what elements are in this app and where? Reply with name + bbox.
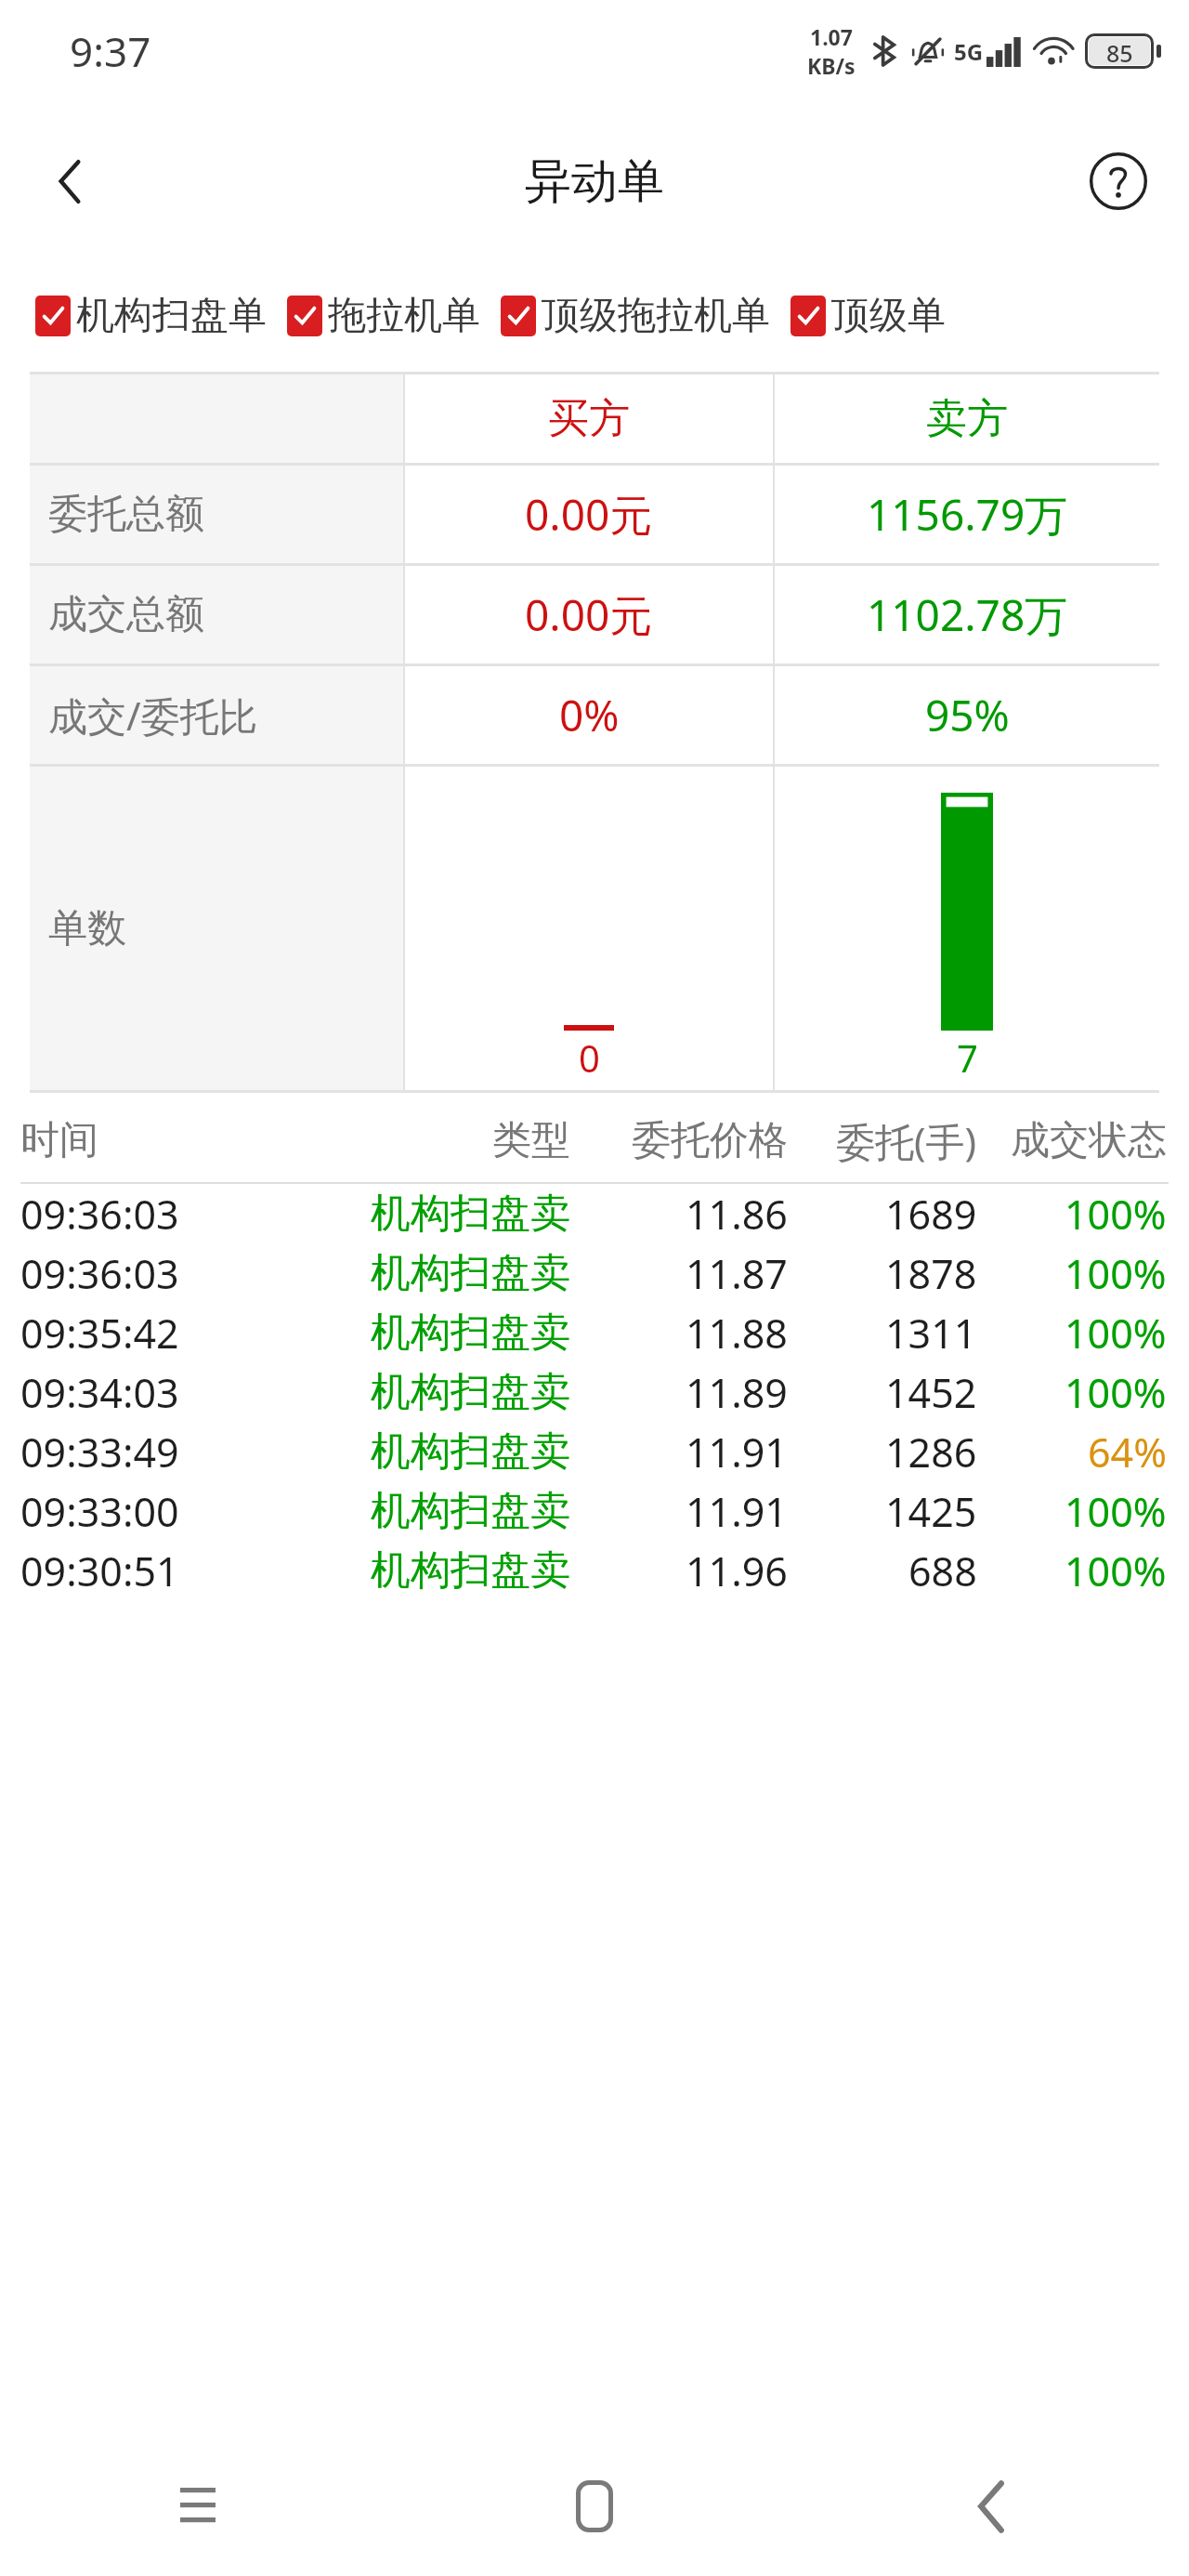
staticText: 单数 bbox=[48, 904, 126, 953]
staticText: 机构扫盘卖 bbox=[371, 1189, 570, 1239]
staticText: 拖拉机单 bbox=[328, 292, 480, 340]
staticText: KB/s bbox=[807, 51, 856, 80]
button[interactable]: 09:35:42 bbox=[0, 1303, 1189, 1362]
staticText: 1.07 bbox=[810, 22, 853, 51]
staticText: 成交/委托比 bbox=[48, 689, 258, 742]
staticText: 机构扫盘卖 bbox=[371, 1367, 570, 1417]
button[interactable]: Back bbox=[792, 2437, 1189, 2576]
staticText: 1286 bbox=[885, 1425, 977, 1479]
button[interactable]: Recent apps bbox=[0, 2437, 396, 2576]
button[interactable]: 机构扫盘单 bbox=[35, 292, 267, 340]
staticText: 11.91 bbox=[686, 1484, 788, 1539]
button[interactable]: 顶级单 bbox=[790, 292, 946, 340]
staticText: 5G bbox=[954, 36, 984, 67]
staticText: 1878 bbox=[885, 1246, 977, 1301]
staticText: 09:30:51 bbox=[20, 1544, 179, 1598]
staticText: 机构扫盘卖 bbox=[371, 1545, 570, 1596]
button[interactable]: 顶级拖拉机单 bbox=[501, 292, 770, 340]
staticText: 9:37 bbox=[70, 23, 151, 79]
staticText: 0% bbox=[559, 686, 620, 744]
button[interactable]: 拖拉机单 bbox=[287, 292, 480, 340]
button[interactable]: 09:36:03 bbox=[0, 1243, 1189, 1303]
staticText: 09:33:49 bbox=[20, 1425, 179, 1479]
staticText: 0.00元 bbox=[525, 585, 653, 644]
staticText: 委托总额 bbox=[48, 490, 204, 539]
staticText: 09:33:00 bbox=[20, 1484, 179, 1539]
staticText: 1689 bbox=[885, 1187, 977, 1242]
staticText: 100% bbox=[1065, 1187, 1167, 1242]
staticText: 成交总额 bbox=[48, 590, 204, 639]
staticText: 异动单 bbox=[525, 152, 664, 211]
staticText: 买方 bbox=[548, 393, 630, 444]
button[interactable]: Back bbox=[26, 137, 115, 226]
staticText: 委托(手) bbox=[836, 1114, 977, 1167]
staticText: 机构扫盘卖 bbox=[371, 1486, 570, 1536]
staticText: 1311 bbox=[885, 1306, 977, 1360]
staticText: 11.91 bbox=[686, 1425, 788, 1479]
button[interactable]: 09:33:49 bbox=[0, 1422, 1189, 1481]
staticText: 1102.78万 bbox=[867, 585, 1068, 644]
button[interactable]: 09:36:03 bbox=[0, 1184, 1189, 1243]
staticText: 委托价格 bbox=[632, 1116, 788, 1165]
button[interactable]: 09:34:03 bbox=[0, 1362, 1189, 1422]
staticText: 64% bbox=[1088, 1425, 1167, 1479]
staticText: 09:34:03 bbox=[20, 1365, 179, 1420]
staticText: 0 bbox=[579, 1032, 600, 1083]
staticText: 11.89 bbox=[686, 1365, 788, 1420]
staticText: 机构扫盘卖 bbox=[371, 1308, 570, 1358]
button[interactable]: 09:33:00 bbox=[0, 1481, 1189, 1541]
staticText: 85 bbox=[1106, 37, 1133, 65]
staticText: 11.86 bbox=[686, 1187, 788, 1242]
staticText: 100% bbox=[1065, 1365, 1167, 1420]
staticText: 09:35:42 bbox=[20, 1306, 179, 1360]
staticText: 机构扫盘单 bbox=[76, 292, 267, 340]
staticText: 1452 bbox=[885, 1365, 977, 1420]
staticText: 成交状态 bbox=[1011, 1116, 1167, 1165]
staticText: 顶级单 bbox=[831, 292, 946, 340]
staticText: 11.87 bbox=[686, 1246, 788, 1301]
staticText: 100% bbox=[1065, 1544, 1167, 1598]
staticText: 卖方 bbox=[926, 393, 1008, 444]
button[interactable]: 09:30:51 bbox=[0, 1541, 1189, 1600]
staticText: 100% bbox=[1065, 1484, 1167, 1539]
staticText: 顶级拖拉机单 bbox=[542, 292, 770, 340]
staticText: 09:36:03 bbox=[20, 1246, 179, 1301]
staticText: 95% bbox=[925, 686, 1010, 744]
staticText: 11.96 bbox=[686, 1544, 788, 1598]
staticText: 11.88 bbox=[686, 1306, 788, 1360]
staticText: 时间 bbox=[20, 1116, 98, 1165]
staticText: 100% bbox=[1065, 1306, 1167, 1360]
staticText: 1425 bbox=[885, 1484, 977, 1539]
staticText: 1156.79万 bbox=[867, 485, 1068, 544]
button[interactable]: Help bbox=[1074, 137, 1163, 226]
button[interactable]: Home bbox=[396, 2437, 792, 2576]
staticText: 0.00元 bbox=[525, 485, 653, 544]
staticText: 类型 bbox=[492, 1116, 570, 1165]
staticText: 7 bbox=[957, 1032, 978, 1083]
staticText: 688 bbox=[908, 1544, 977, 1598]
staticText: 100% bbox=[1065, 1246, 1167, 1301]
staticText: 09:36:03 bbox=[20, 1187, 179, 1242]
staticText: 机构扫盘卖 bbox=[371, 1426, 570, 1477]
staticText: 机构扫盘卖 bbox=[371, 1248, 570, 1298]
